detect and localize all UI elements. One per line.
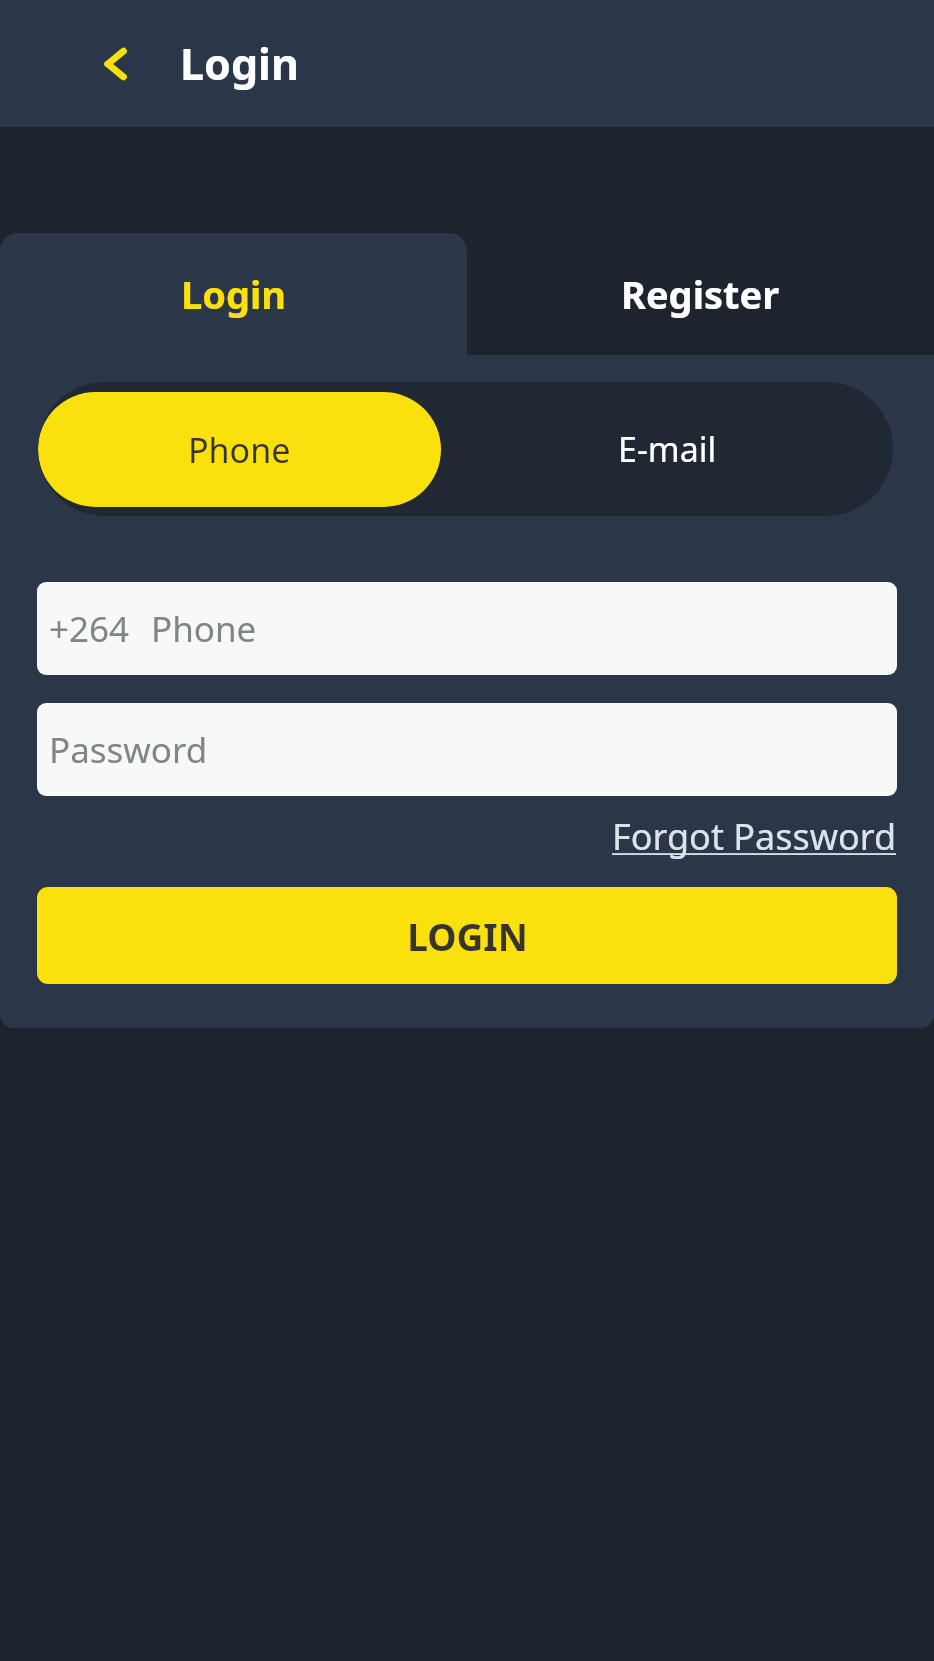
button[interactable]: Phone (38, 392, 441, 507)
button[interactable]: Register (467, 233, 934, 355)
button[interactable]: E-mail (441, 382, 893, 516)
staticText: +264 (49, 605, 130, 653)
staticText: Phone (151, 605, 257, 653)
button[interactable]: Back (84, 32, 148, 96)
staticText: Register (621, 268, 780, 320)
button[interactable]: +264 (37, 582, 897, 675)
button[interactable]: Login (0, 233, 467, 355)
staticText: Phone (188, 427, 291, 473)
staticText: Login (180, 34, 299, 93)
staticText: Password (49, 726, 208, 774)
button[interactable]: LOGIN (37, 887, 897, 984)
staticText: E-mail (618, 426, 717, 472)
button[interactable]: Forgot Password (612, 808, 897, 865)
button[interactable]: Password (37, 703, 897, 796)
staticText: Login (181, 268, 287, 320)
staticText: Forgot Password (612, 812, 897, 861)
staticText: LOGIN (407, 911, 528, 961)
